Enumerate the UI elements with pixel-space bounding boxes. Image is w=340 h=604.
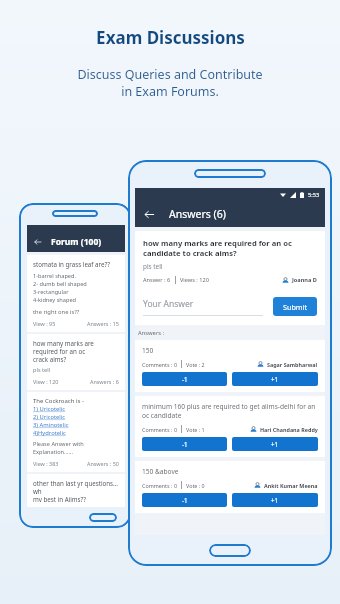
staticText: 2- dumb bell shaped [33,280,87,288]
button[interactable]: +1 [232,372,318,386]
staticText: Forum (100) [51,236,102,248]
staticText: the right one is?? [33,308,80,316]
staticText: 150 &above [142,467,179,476]
staticText: The Cockroach is - [33,397,84,405]
staticText: candidate to crack aims? [143,248,237,258]
staticText: Answers : 6 [90,378,119,385]
button[interactable]: Back [135,201,325,227]
staticText: how many marks are required for an oc [143,238,292,248]
button[interactable]: other than last yr questions... wh [27,474,125,507]
staticText: 3-rectangular [33,288,69,296]
other: Back [34,238,42,246]
staticText: my best in Aiims?? [33,495,86,502]
button[interactable]: The Cockroach is - [27,392,125,472]
staticText: Vote : 2 [186,361,205,368]
staticText: crack aims? [33,355,67,363]
staticText: Comments : 0 [142,361,177,368]
staticText: Hari Chandana Reddy [260,426,318,433]
button[interactable]: how many marks are required for an oc [27,334,125,390]
button[interactable]: -1 [142,437,227,451]
staticText: Views : 120 [180,276,209,284]
staticText: Joanna D [292,276,317,284]
staticText: Vote : 0 [186,482,205,489]
staticText: 4)Hydrotelic [33,429,66,437]
staticText: Exam Discussions [96,26,245,49]
staticText: 2) Uricotelic [33,413,66,421]
staticText: pls tell [33,366,51,374]
staticText: oc candidate [142,411,182,420]
staticText: Your Answer [143,298,194,310]
staticText: pls tell [143,262,163,271]
staticText: 1) Uricotelic [33,405,66,413]
staticText: minimum 160 plus are required to get aii… [142,402,316,411]
staticText: Answers (6) [169,207,226,221]
staticText: Submit [283,302,307,312]
button[interactable]: +1 [232,493,318,507]
staticText: Comments : 0 [142,482,177,489]
staticText: -1 [182,375,188,383]
staticText: stomata in grass leaf are?? [33,260,110,268]
button[interactable]: Back [27,231,125,252]
button[interactable]: +1 [232,437,318,451]
staticText: +1 [271,375,279,383]
staticText: other than last yr questions... wh [33,479,119,495]
staticText: +1 [271,440,279,448]
staticText: Answers : 15 [87,320,119,327]
staticText: 3) Aminotelic [33,421,69,429]
staticText: 4-kidney shaped [33,296,76,304]
staticText: how many marks are required for an oc [33,339,119,355]
button[interactable]: -1 [142,372,227,386]
staticText: 1-barrel shaped. [33,272,76,280]
button[interactable]: -1 [142,493,227,507]
staticText: -1 [182,496,188,504]
staticText: View : 120 [33,378,59,385]
staticText: Sagar Sambharwal [267,361,318,368]
staticText: View : 383 [33,460,59,467]
staticText: Comments : 0 [142,426,177,433]
staticText: Please Answer with Explanation...... [33,440,119,456]
staticText: Answer : 6 [143,276,171,284]
button[interactable]: Submit [273,297,317,316]
staticText: +1 [271,496,279,504]
staticText: Ankit Kumar Meena [264,482,318,489]
staticText: View : 95 [33,320,56,327]
staticText: Answers : [138,329,165,337]
staticText: -1 [182,440,188,448]
staticText: 5:53 [308,191,320,199]
staticText: 150 [142,346,154,355]
other: Back [144,209,155,220]
staticText: Answers : 50 [87,460,119,467]
staticText: Vote : 1 [186,426,205,433]
button[interactable]: stomata in grass leaf are?? [27,255,125,332]
staticText: Discuss Queries and Contribute in Exam F… [77,66,263,100]
button[interactable]: Home [209,544,251,557]
